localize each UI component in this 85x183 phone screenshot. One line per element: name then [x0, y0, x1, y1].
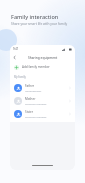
button[interactable]: Back: [11, 54, 18, 61]
staticText: Common member: [25, 115, 47, 118]
staticText: Add family member: [22, 65, 50, 69]
staticText: Father: [25, 84, 35, 88]
staticText: Administrator: [25, 89, 42, 92]
button[interactable]: Father: [10, 81, 75, 94]
staticText: My family: [14, 75, 26, 79]
staticText: Share your smart life with your family: [11, 22, 68, 26]
button[interactable]: Sister: [10, 107, 75, 120]
button[interactable]: Add family member: [10, 62, 75, 72]
staticText: Family interaction: [11, 13, 59, 20]
staticText: Mother: [25, 97, 36, 101]
button[interactable]: Mother: [10, 94, 75, 107]
staticText: Sister: [25, 110, 33, 114]
staticText: Common member: [25, 102, 47, 105]
staticText: Sharing equipment: [28, 56, 58, 60]
staticText: 9:41: [13, 47, 19, 51]
